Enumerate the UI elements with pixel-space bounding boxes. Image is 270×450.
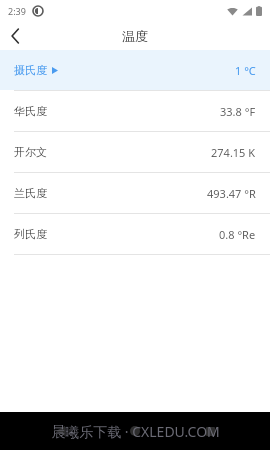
staticText: 列氏度 <box>14 227 47 241</box>
button[interactable]: 开尔文 <box>0 132 270 172</box>
staticText: 华氏度 <box>14 104 47 118</box>
staticText: 0.8 °Re <box>219 227 256 242</box>
staticText: 兰氏度 <box>14 186 47 200</box>
staticText: 晨曦乐下载 · CXLEDU.COM <box>51 422 220 441</box>
button[interactable]: Home <box>120 416 150 446</box>
button[interactable]: 华氏度 <box>0 91 270 131</box>
staticText: 274.15 K <box>211 145 256 160</box>
button[interactable]: Back <box>0 22 30 50</box>
button[interactable]: 摄氏度 <box>0 50 270 90</box>
staticText: 33.8 °F <box>220 104 256 119</box>
button[interactable]: 兰氏度 <box>0 173 270 213</box>
staticText: 1 °C <box>235 63 256 78</box>
staticText: 开尔文 <box>14 145 47 159</box>
staticText: 温度 <box>122 28 148 44</box>
staticText: 493.47 °R <box>207 186 256 201</box>
button[interactable]: 列氏度 <box>0 214 270 254</box>
button[interactable]: Recent apps <box>195 416 225 446</box>
staticText: 摄氏度 <box>14 63 47 77</box>
staticText: 2:39 <box>8 5 26 17</box>
button[interactable]: Back <box>45 416 75 446</box>
